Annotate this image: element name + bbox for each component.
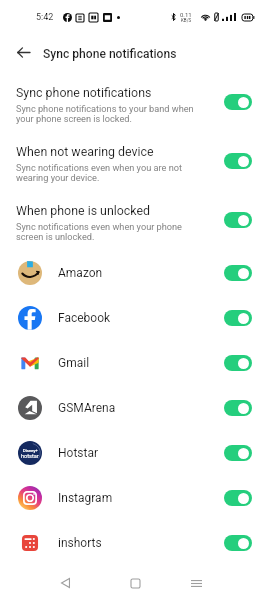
staticText: Instagram xyxy=(58,491,113,505)
button[interactable]: Back xyxy=(10,39,36,65)
staticText: Facebook xyxy=(58,311,111,325)
staticText: Disney+ xyxy=(23,448,38,453)
staticText: KB/S xyxy=(181,18,192,23)
button[interactable]: Toggle xyxy=(224,400,252,416)
staticText: hotstar xyxy=(21,453,39,460)
button[interactable]: Instagram xyxy=(0,475,270,520)
button[interactable]: Facebook xyxy=(0,295,270,340)
button[interactable]: Gmail xyxy=(0,340,270,385)
button[interactable]: Toggle xyxy=(224,94,252,110)
button[interactable]: When not wearing device xyxy=(0,132,270,191)
button[interactable]: Toggle xyxy=(224,265,252,281)
staticText: Amazon xyxy=(58,266,103,280)
staticText: Sync phone notifications xyxy=(16,85,152,100)
button[interactable]: Home xyxy=(114,566,156,600)
staticText: Sync phone notifications xyxy=(43,47,177,61)
button[interactable]: Toggle xyxy=(224,490,252,506)
button[interactable]: Recent apps xyxy=(175,566,217,600)
button[interactable]: Toggle xyxy=(224,445,252,461)
staticText: Sync notifications even when you are not… xyxy=(16,162,182,184)
button[interactable]: Toggle xyxy=(224,212,252,228)
staticText: Gmail xyxy=(58,356,90,370)
button[interactable]: Toggle xyxy=(224,535,252,551)
staticText: GSMArena xyxy=(58,401,116,415)
staticText: Sync notifications even when your phone … xyxy=(16,221,182,243)
staticText: When phone is unlocked xyxy=(16,203,151,218)
staticText: inshorts xyxy=(58,536,102,550)
button[interactable]: Toggle xyxy=(224,153,252,169)
button[interactable]: GSMArena xyxy=(0,385,270,430)
staticText: 5:42 xyxy=(36,12,54,23)
button[interactable]: Back xyxy=(44,566,86,600)
button[interactable]: Disney+ xyxy=(0,430,270,475)
button[interactable]: Sync phone notifications xyxy=(0,73,270,132)
staticText: When not wearing device xyxy=(16,144,154,159)
staticText: 0.11 xyxy=(180,11,192,18)
staticText: Hotstar xyxy=(58,446,99,460)
staticText: Sync phone notifications to your band wh… xyxy=(16,103,194,125)
button[interactable]: Toggle xyxy=(224,355,252,371)
button[interactable]: Toggle xyxy=(224,310,252,326)
button[interactable]: inshorts xyxy=(0,520,270,565)
button[interactable]: When phone is unlocked xyxy=(0,191,270,250)
button[interactable]: Amazon xyxy=(0,250,270,295)
